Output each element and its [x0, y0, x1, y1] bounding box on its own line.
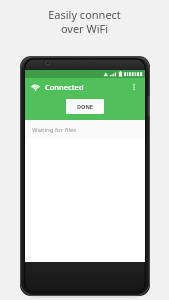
button[interactable]: DONE — [66, 99, 104, 114]
staticText: Easily connect over WiFi — [48, 7, 121, 36]
staticText: DONE — [77, 103, 93, 110]
staticText: Connected — [45, 82, 84, 92]
button[interactable]: Wi-Fi connected — [25, 78, 145, 96]
other: Wi-Fi connected — [31, 83, 40, 92]
button[interactable]: More options — [127, 80, 141, 94]
staticText: Waiting for files — [32, 126, 77, 134]
